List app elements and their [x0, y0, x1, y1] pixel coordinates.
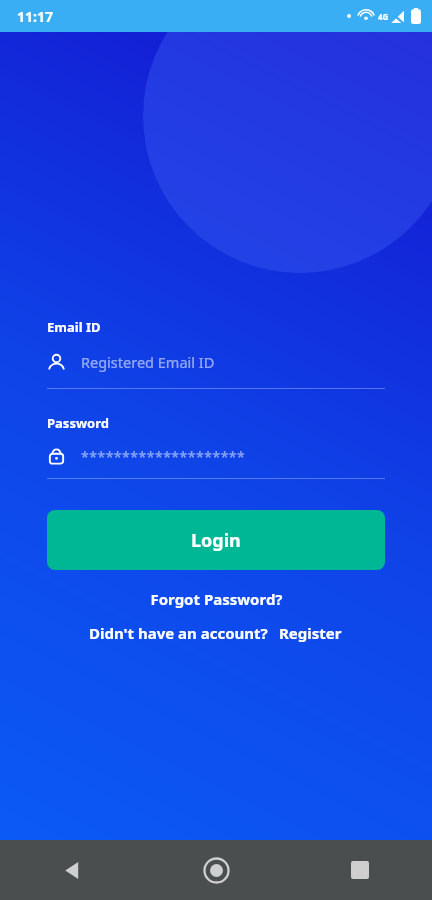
- button[interactable]: ********************: [47, 447, 385, 466]
- button[interactable]: Forgot Password?: [144, 587, 289, 611]
- staticText: 11:17: [17, 7, 53, 26]
- staticText: 4G: [378, 11, 389, 22]
- staticText: Registered Email ID: [81, 352, 215, 372]
- staticText: Forgot Password?: [150, 589, 283, 609]
- staticText: Register: [279, 623, 342, 643]
- button[interactable]: Back: [0, 840, 144, 900]
- button[interactable]: Recents: [288, 840, 432, 900]
- button[interactable]: Register: [277, 621, 344, 645]
- staticText: Password: [47, 414, 109, 432]
- staticText: Email ID: [47, 318, 101, 336]
- button[interactable]: Login: [47, 510, 385, 570]
- staticText: Login: [191, 528, 241, 553]
- button[interactable]: Home: [144, 840, 288, 900]
- staticText: Didn't have an account?: [89, 623, 268, 643]
- button[interactable]: Registered Email ID: [47, 352, 385, 372]
- staticText: ********************: [81, 447, 246, 466]
